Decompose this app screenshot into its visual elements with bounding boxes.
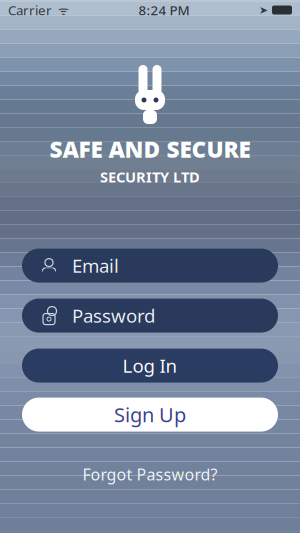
staticText: Password [72, 303, 155, 328]
button[interactable]: Log In [22, 349, 278, 383]
staticText: SECURITY LTD [100, 167, 200, 187]
button[interactable]: Password [22, 299, 278, 333]
button[interactable]: Email [22, 249, 278, 283]
staticText: Carrier [8, 1, 52, 19]
staticText: Log In [122, 353, 177, 378]
staticText: ➤ [259, 4, 268, 16]
staticText: 8:24 PM [138, 1, 189, 19]
button[interactable]: Forgot Password? [68, 459, 231, 490]
staticText: Forgot Password? [82, 464, 217, 485]
staticText: SAFE AND SECURE [49, 134, 250, 164]
button[interactable]: Sign Up [22, 398, 278, 432]
staticText: Sign Up [114, 401, 186, 428]
staticText: Email [72, 253, 119, 278]
staticText: ᯤ [52, 2, 69, 18]
